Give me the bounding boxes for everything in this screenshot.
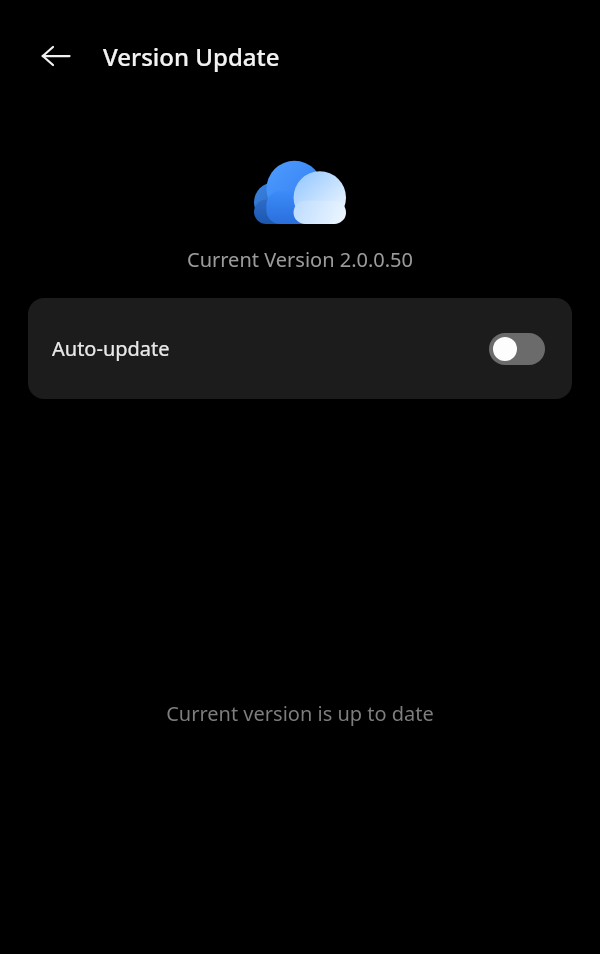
staticText: Current Version 2.0.0.50 xyxy=(0,246,600,273)
other: Auto-update toggle xyxy=(489,333,545,365)
button[interactable]: Auto-update xyxy=(28,298,572,399)
staticText: Current version is up to date xyxy=(0,700,600,727)
staticText: Auto-update xyxy=(52,335,489,362)
staticText: Version Update xyxy=(103,40,280,73)
button[interactable]: Back xyxy=(22,22,90,90)
